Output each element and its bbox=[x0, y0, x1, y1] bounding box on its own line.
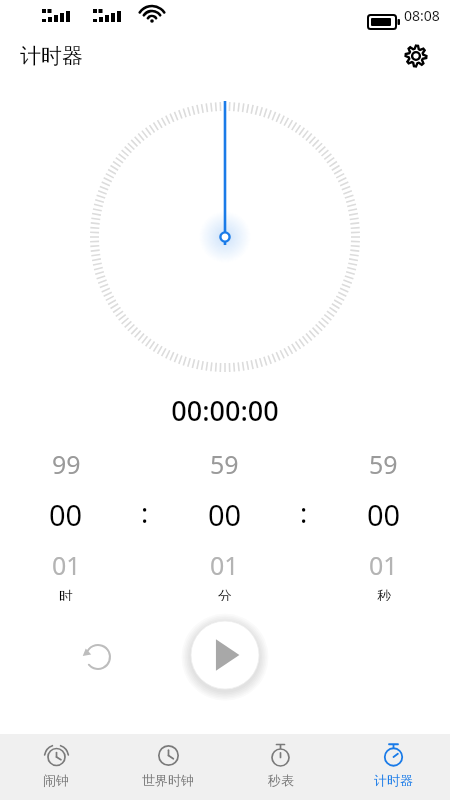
staticText: 闹钟 bbox=[43, 772, 69, 788]
button[interactable]: 闹钟 bbox=[0, 734, 112, 800]
staticText: 01 bbox=[210, 548, 239, 582]
staticText: 分 bbox=[218, 588, 232, 601]
staticText: 01 bbox=[369, 548, 398, 582]
button[interactable]: 计时器 bbox=[337, 734, 450, 800]
staticText: 59 bbox=[369, 447, 398, 481]
staticText: 59 bbox=[210, 447, 239, 481]
staticText: 计时器 bbox=[374, 772, 413, 788]
button[interactable]: Reset bbox=[74, 633, 122, 681]
staticText: 时 bbox=[59, 588, 73, 601]
staticText: 秒 bbox=[377, 588, 391, 601]
staticText: 秒表 bbox=[268, 772, 294, 788]
staticText: 00:00:00 bbox=[171, 392, 279, 429]
staticText: 计时器 bbox=[20, 43, 83, 69]
button[interactable]: 世界时钟 bbox=[112, 734, 224, 800]
staticText: 世界时钟 bbox=[142, 772, 194, 788]
staticText: 01 bbox=[52, 548, 81, 582]
button[interactable]: 99 bbox=[0, 441, 132, 601]
staticText: : bbox=[300, 494, 308, 531]
staticText: 99 bbox=[52, 447, 81, 481]
button[interactable]: 秒表 bbox=[224, 734, 337, 800]
staticText: 00 bbox=[367, 495, 401, 534]
button[interactable]: 59 bbox=[317, 441, 450, 601]
staticText: 00 bbox=[49, 495, 83, 534]
button[interactable]: Settings bbox=[394, 34, 438, 78]
staticText: 08:08 bbox=[404, 6, 440, 25]
staticText: 00 bbox=[208, 495, 242, 534]
button[interactable]: 59 bbox=[158, 441, 291, 601]
button[interactable]: Start bbox=[188, 618, 262, 692]
staticText: : bbox=[141, 494, 149, 531]
